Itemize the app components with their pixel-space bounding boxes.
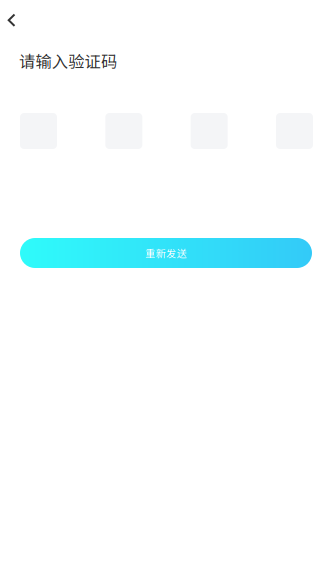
button[interactable]: 重新发送 xyxy=(20,238,312,268)
button[interactable]: Back xyxy=(0,0,30,32)
staticText: 重新发送 xyxy=(146,246,186,260)
staticText: 请输入验证码 xyxy=(19,49,117,73)
button[interactable]: Verification code xyxy=(20,113,313,149)
